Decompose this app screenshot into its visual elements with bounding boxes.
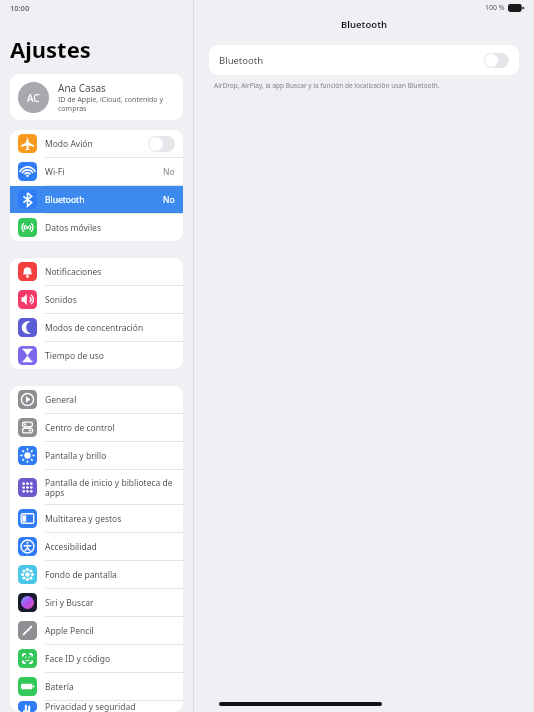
- staticText: AC: [27, 91, 40, 105]
- staticText: Bluetooth: [341, 18, 388, 31]
- staticText: Notificaciones: [45, 266, 175, 278]
- button[interactable]: General: [10, 386, 183, 413]
- staticText: Sonidos: [45, 294, 175, 306]
- staticText: Datos móviles: [45, 222, 175, 234]
- staticText: Siri y Buscar: [45, 597, 175, 609]
- button[interactable]: Batería: [10, 673, 183, 700]
- staticText: Face ID y código: [45, 653, 175, 665]
- button[interactable]: Privacidad y seguridad: [10, 701, 183, 712]
- staticText: 100 %: [485, 3, 505, 13]
- staticText: Privacidad y seguridad: [45, 701, 175, 712]
- button[interactable]: Modos de concentración: [10, 314, 183, 341]
- staticText: Centro de control: [45, 422, 175, 434]
- staticText: Apple Pencil: [45, 625, 175, 637]
- staticText: Modos de concentración: [45, 322, 175, 334]
- staticText: Modo Avión: [45, 138, 148, 150]
- button[interactable]: Multitarea y gestos: [10, 505, 183, 532]
- button[interactable]: Tiempo de uso: [10, 342, 183, 369]
- staticText: AirDrop, AirPlay, la app Buscar y la fun…: [214, 81, 440, 90]
- button[interactable]: Wi-Fi: [10, 158, 183, 185]
- button[interactable]: Pantalla y brillo: [10, 442, 183, 469]
- staticText: Ana Casas: [58, 81, 106, 95]
- staticText: ID de Apple, iCloud, contenido y compras: [58, 95, 175, 113]
- staticText: Pantalla y brillo: [45, 450, 175, 462]
- staticText: 10:00: [10, 3, 30, 13]
- button[interactable]: Pantalla de inicio y biblioteca de apps: [10, 470, 183, 504]
- button[interactable]: Notificaciones: [10, 258, 183, 285]
- button[interactable]: Modo Avión: [10, 130, 183, 157]
- staticText: Wi-Fi: [45, 166, 163, 178]
- staticText: No: [163, 194, 175, 206]
- staticText: No: [163, 166, 175, 178]
- staticText: Accesibilidad: [45, 541, 175, 553]
- staticText: Batería: [45, 681, 175, 693]
- staticText: Ajustes: [10, 34, 91, 64]
- button[interactable]: AC: [10, 74, 183, 120]
- staticText: Bluetooth: [219, 54, 484, 67]
- button[interactable]: Datos móviles: [10, 214, 183, 241]
- staticText: Fondo de pantalla: [45, 569, 175, 581]
- staticText: Bluetooth: [45, 194, 163, 206]
- button[interactable]: Centro de control: [10, 414, 183, 441]
- button[interactable]: Fondo de pantalla: [10, 561, 183, 588]
- staticText: Tiempo de uso: [45, 350, 175, 362]
- button[interactable]: Siri y Buscar: [10, 589, 183, 616]
- button[interactable]: Face ID y código: [10, 645, 183, 672]
- staticText: General: [45, 394, 175, 406]
- button[interactable]: Sonidos: [10, 286, 183, 313]
- button[interactable]: Accesibilidad: [10, 533, 183, 560]
- staticText: Multitarea y gestos: [45, 513, 175, 525]
- staticText: Pantalla de inicio y biblioteca de apps: [45, 477, 175, 498]
- button[interactable]: Bluetooth: [10, 186, 183, 213]
- button[interactable]: Bluetooth: [209, 45, 519, 75]
- button[interactable]: Apple Pencil: [10, 617, 183, 644]
